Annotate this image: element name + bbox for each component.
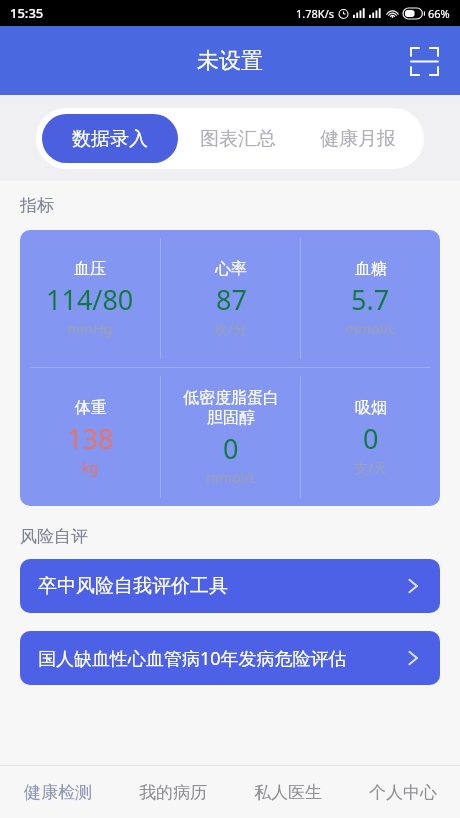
staticText: 次/分	[214, 319, 248, 338]
staticText: 我的病历	[139, 782, 207, 803]
staticText: 健康月报	[320, 127, 396, 151]
staticText: 健康检测	[24, 782, 92, 803]
button[interactable]: 健康检测	[0, 766, 115, 818]
button[interactable]: 吸烟	[301, 368, 440, 506]
staticText: 指标	[20, 195, 54, 216]
staticText: 血压	[74, 259, 106, 279]
button[interactable]: 图表汇总	[178, 108, 298, 169]
staticText: 国人缺血性心血管病10年发病危险评估	[38, 646, 396, 671]
staticText: 138	[67, 420, 114, 457]
staticText: 吸烟	[355, 398, 387, 418]
staticText: 114/80	[46, 281, 134, 318]
button[interactable]: 卒中风险自我评价工具	[20, 559, 440, 613]
staticText: 数据录入	[72, 127, 148, 151]
button[interactable]: 私人医生	[230, 766, 345, 818]
button[interactable]: 心率	[161, 230, 300, 367]
staticText: 心率	[215, 259, 247, 279]
button[interactable]: 血糖	[301, 230, 440, 367]
staticText: 低密度脂蛋白	[183, 388, 279, 408]
button[interactable]: 体重	[20, 368, 160, 506]
button[interactable]: 低密度脂蛋白	[161, 368, 300, 506]
button[interactable]: 扫一扫	[402, 39, 446, 83]
button[interactable]: 我的病历	[115, 766, 230, 818]
staticText: 胆固醇	[207, 408, 255, 428]
button[interactable]: 血压	[20, 230, 160, 367]
staticText: 卒中风险自我评价工具	[38, 574, 396, 598]
staticText: 87	[216, 281, 247, 318]
staticText: 血糖	[355, 259, 387, 279]
staticText: 0	[223, 430, 239, 467]
staticText: 15:35	[10, 4, 44, 22]
staticText: 66%	[428, 6, 450, 21]
staticText: mmol/L	[206, 468, 257, 487]
button[interactable]: 数据录入	[42, 114, 178, 163]
staticText: 个人中心	[369, 782, 437, 803]
staticText: mmHg	[67, 319, 113, 338]
button[interactable]: 个人中心	[345, 766, 460, 818]
staticText: 私人医生	[254, 782, 322, 803]
staticText: 0	[363, 420, 379, 457]
staticText: 图表汇总	[200, 127, 276, 151]
staticText: 风险自评	[20, 526, 88, 547]
staticText: 未设置	[197, 47, 263, 75]
button[interactable]: 国人缺血性心血管病10年发病危险评估	[20, 631, 440, 685]
staticText: mmol/L	[345, 319, 396, 338]
staticText: 1.78K/s	[296, 6, 334, 21]
button[interactable]: 健康月报	[298, 108, 418, 169]
staticText: 5.7	[351, 281, 390, 318]
staticText: kg	[82, 458, 99, 477]
staticText: 支/天	[354, 458, 388, 477]
staticText: 体重	[75, 398, 107, 418]
